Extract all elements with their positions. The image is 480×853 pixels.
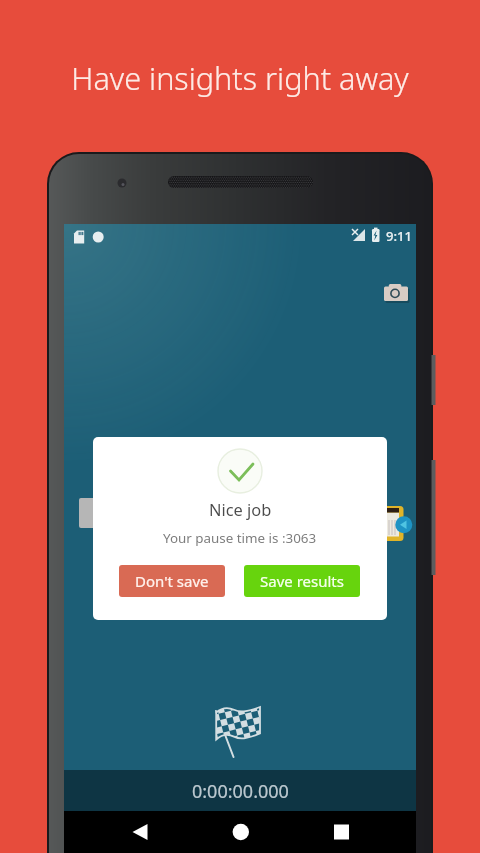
button[interactable]: Menu [79,498,107,528]
staticText: Don't save [135,571,209,591]
button[interactable]: Save results [244,565,360,597]
staticText: Your pause time is :3063 [163,529,317,547]
button[interactable]: Back [124,811,433,853]
staticText: Save results [260,571,344,591]
staticText: Have insights right away [71,57,409,99]
staticText: 9:11 [386,227,412,245]
button[interactable]: Don't save [119,565,225,597]
staticText: Nice job [209,498,272,520]
button[interactable]: Camera [378,274,414,310]
staticText: 0:00:00.000 [192,779,289,804]
